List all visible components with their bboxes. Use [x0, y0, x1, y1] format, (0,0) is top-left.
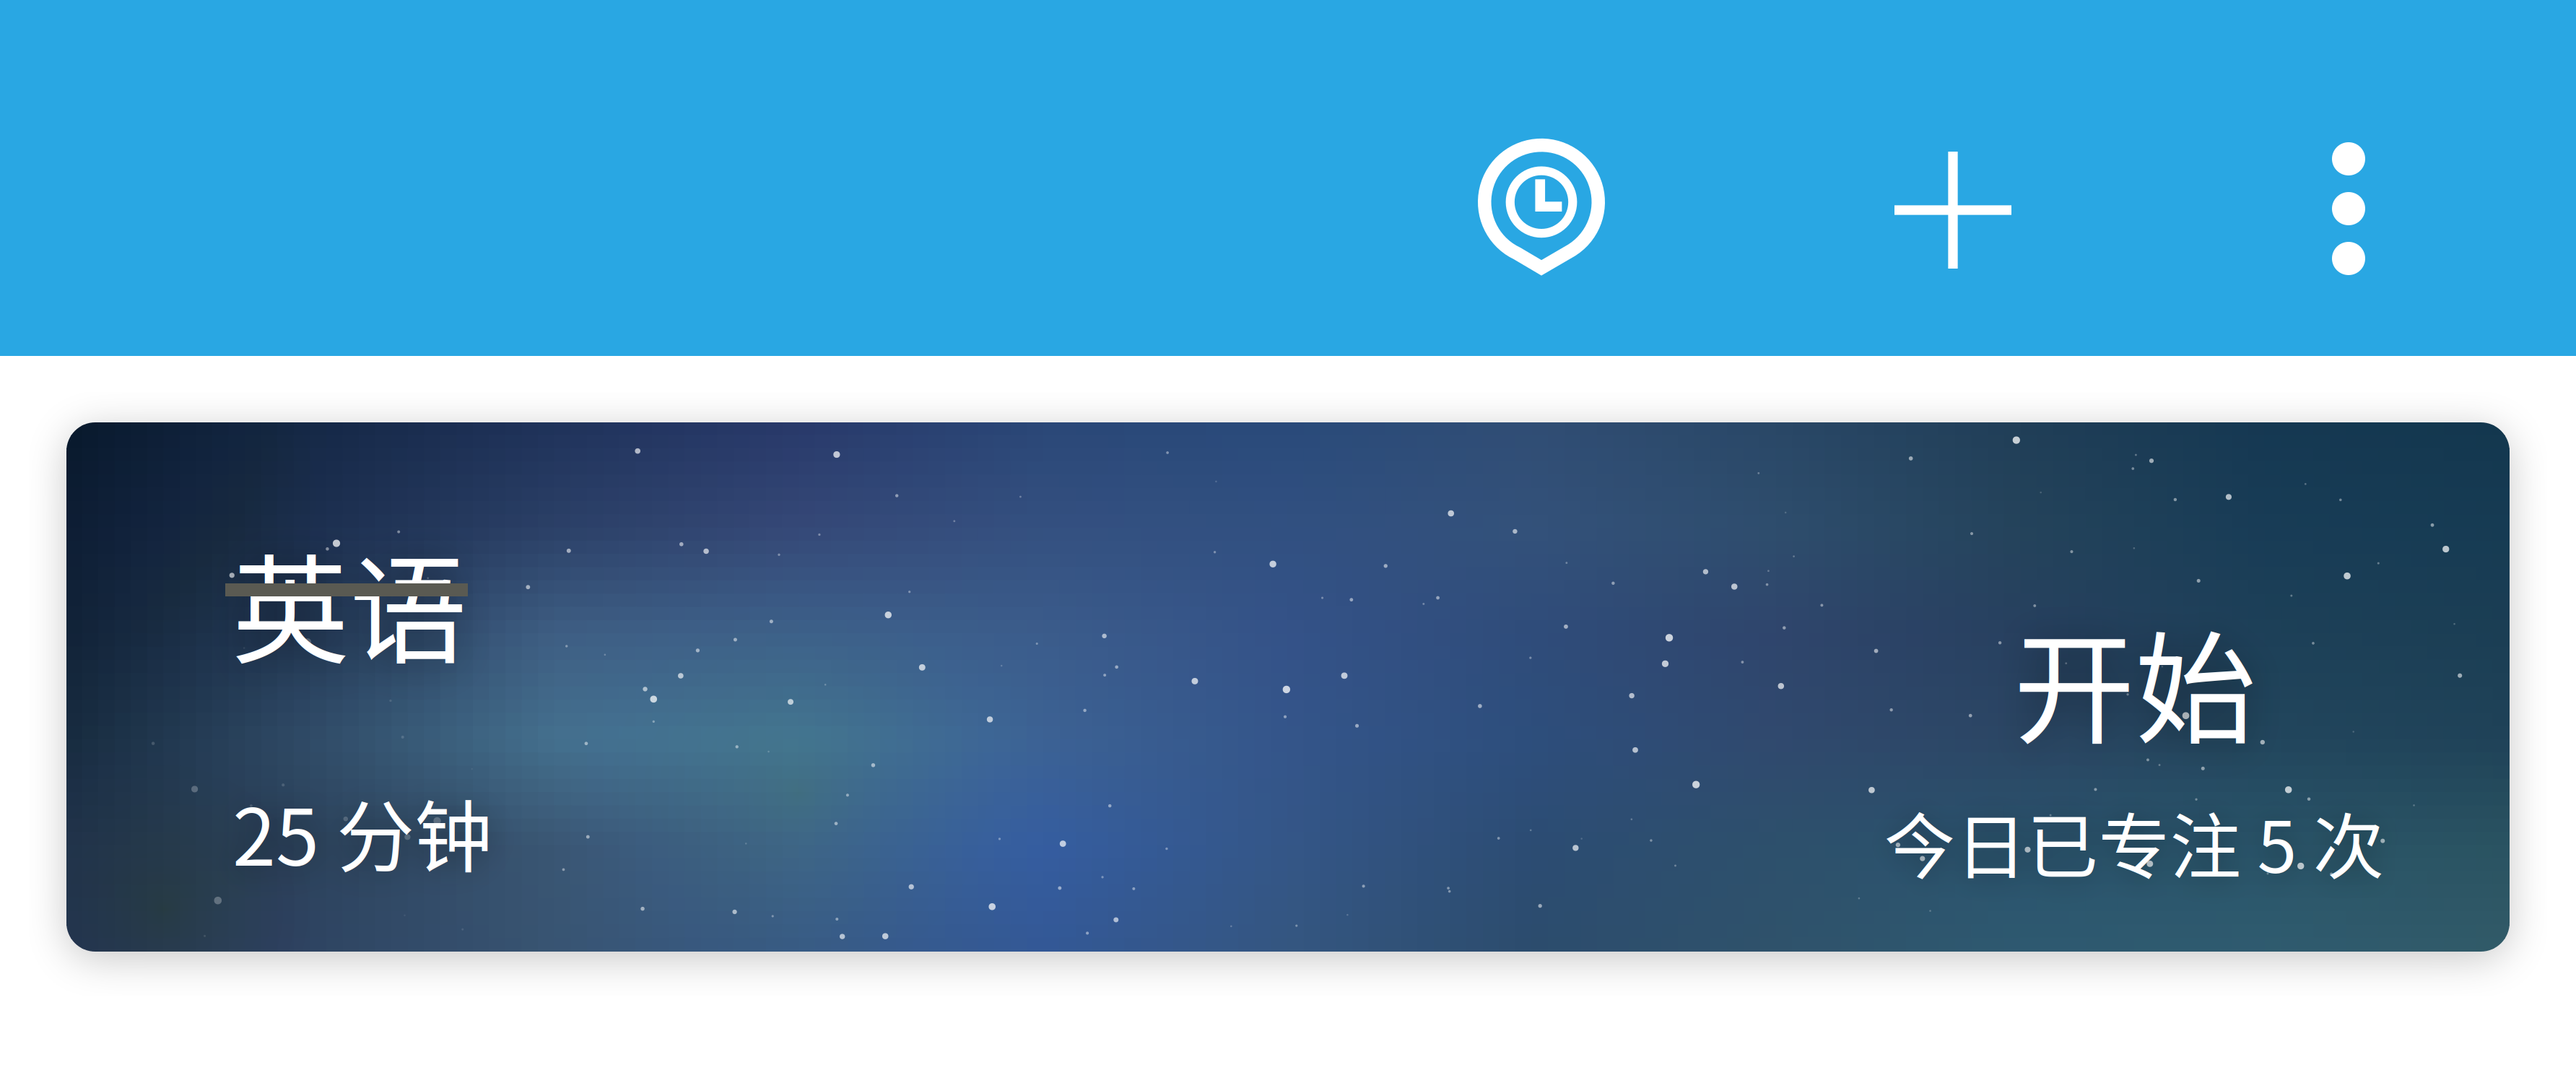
- staticText: 英语: [232, 517, 467, 687]
- button[interactable]: Scheduled focus: [1433, 29, 1650, 384]
- button[interactable]: 英语: [66, 422, 2510, 952]
- staticText: 25 分钟: [232, 775, 492, 888]
- staticText: 开始: [2014, 593, 2256, 769]
- button[interactable]: Add focus session: [1845, 32, 2061, 388]
- staticText: 今日已专注 5 次: [1884, 790, 2384, 893]
- button[interactable]: More options: [2255, 31, 2442, 387]
